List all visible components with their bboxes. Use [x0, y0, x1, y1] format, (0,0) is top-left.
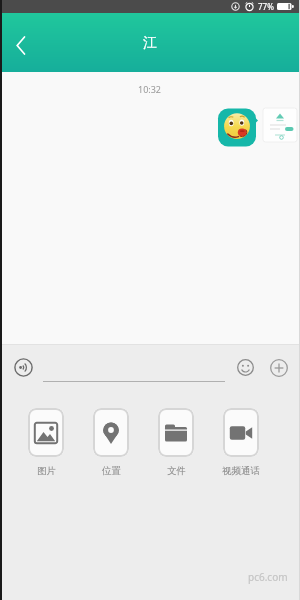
staticText: 视频通话	[222, 465, 260, 477]
button[interactable]	[28, 408, 64, 457]
button[interactable]	[6, 30, 36, 60]
button[interactable]	[218, 108, 258, 147]
staticText: 文件	[167, 465, 186, 477]
button[interactable]	[93, 408, 129, 457]
button[interactable]	[223, 408, 259, 457]
button[interactable]	[270, 359, 288, 377]
button[interactable]	[14, 358, 33, 377]
staticText: pc6.com	[248, 570, 288, 584]
staticText: 位置	[102, 465, 121, 477]
staticText: 图片	[37, 465, 56, 477]
button[interactable]	[237, 359, 254, 376]
button[interactable]	[158, 408, 194, 457]
staticText: 10:32	[138, 83, 162, 95]
staticText: 江	[143, 34, 157, 52]
staticText: 77%	[258, 1, 274, 12]
